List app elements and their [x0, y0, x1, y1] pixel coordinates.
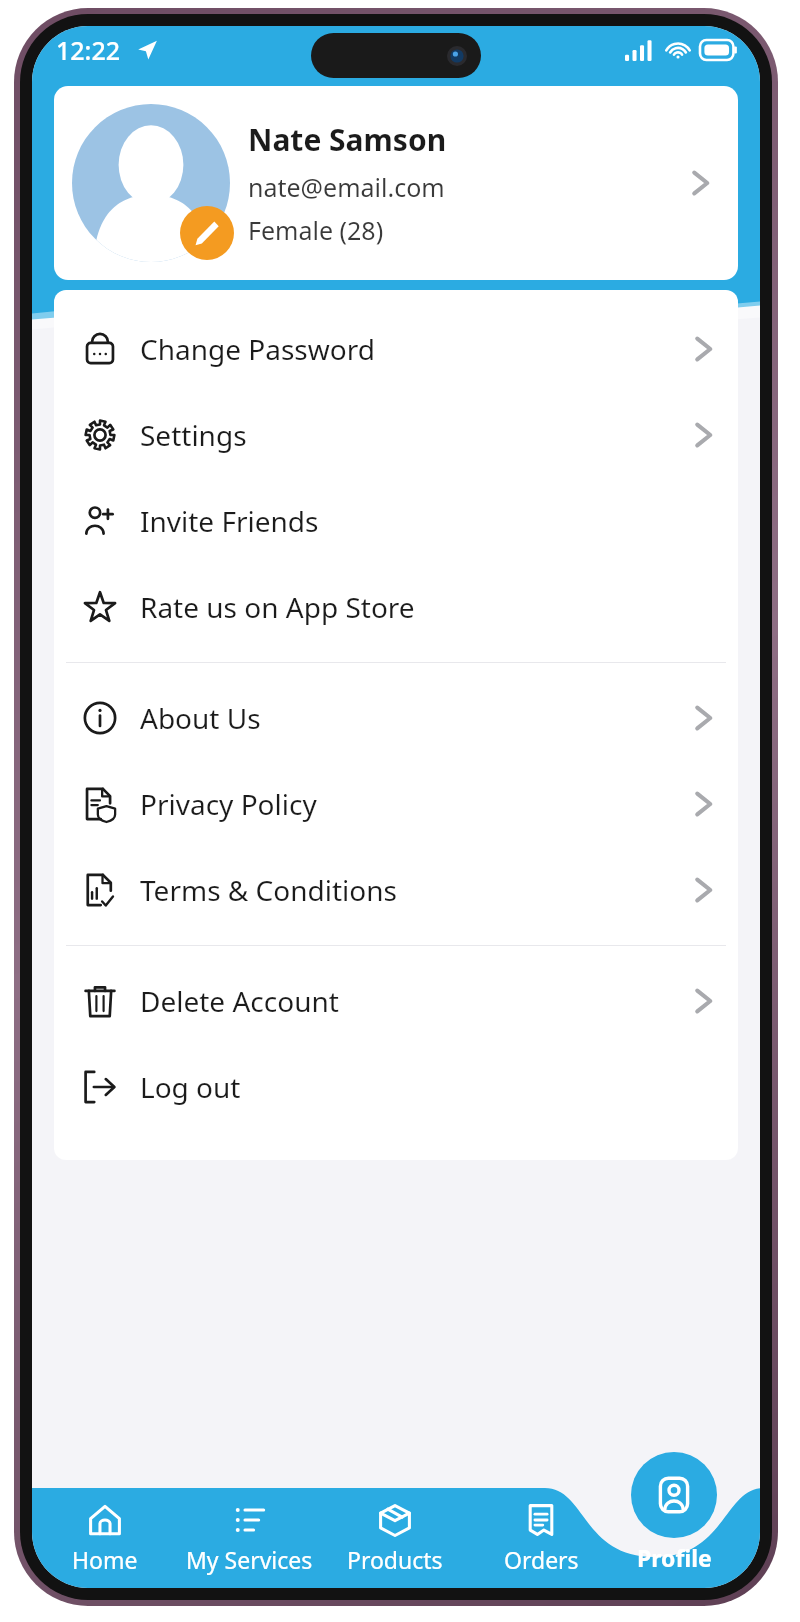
staticText: Settings: [140, 416, 690, 454]
button[interactable]: Orders: [468, 1488, 614, 1588]
staticText: 12:22: [56, 33, 121, 67]
staticText: Change Password: [140, 330, 690, 368]
staticText: My Services: [186, 1544, 313, 1575]
staticText: Privacy Policy: [140, 785, 690, 823]
button[interactable]: Profile: [631, 1452, 717, 1538]
button[interactable]: Edit profile: [54, 86, 738, 280]
staticText: Products: [347, 1544, 443, 1575]
staticText: Rate us on App Store: [140, 588, 716, 626]
staticText: Female (28): [248, 213, 384, 247]
button[interactable]: Change Password: [54, 306, 738, 392]
button[interactable]: Edit profile: [180, 206, 234, 260]
button[interactable]: Delete Account: [54, 958, 738, 1044]
button[interactable]: Privacy Policy: [54, 761, 738, 847]
staticText: Profile: [637, 1542, 712, 1570]
button[interactable]: Invite Friends: [54, 478, 738, 564]
button[interactable]: Settings: [54, 392, 738, 478]
staticText: Orders: [504, 1544, 579, 1575]
button[interactable]: Terms & Conditions: [54, 847, 738, 933]
button[interactable]: Rate us on App Store: [54, 564, 738, 650]
staticText: Nate Samson: [248, 119, 447, 160]
staticText: Home: [72, 1544, 138, 1575]
button[interactable]: Log out: [54, 1044, 738, 1130]
button[interactable]: Home: [32, 1488, 177, 1588]
button[interactable]: My Services: [177, 1488, 322, 1588]
staticText: nate@email.com: [248, 170, 445, 204]
button[interactable]: Products: [322, 1488, 468, 1588]
staticText: Invite Friends: [140, 502, 716, 540]
staticText: Delete Account: [140, 982, 690, 1020]
staticText: Terms & Conditions: [140, 871, 690, 909]
button[interactable]: About Us: [54, 675, 738, 761]
staticText: About Us: [140, 699, 690, 737]
staticText: Log out: [140, 1068, 716, 1106]
